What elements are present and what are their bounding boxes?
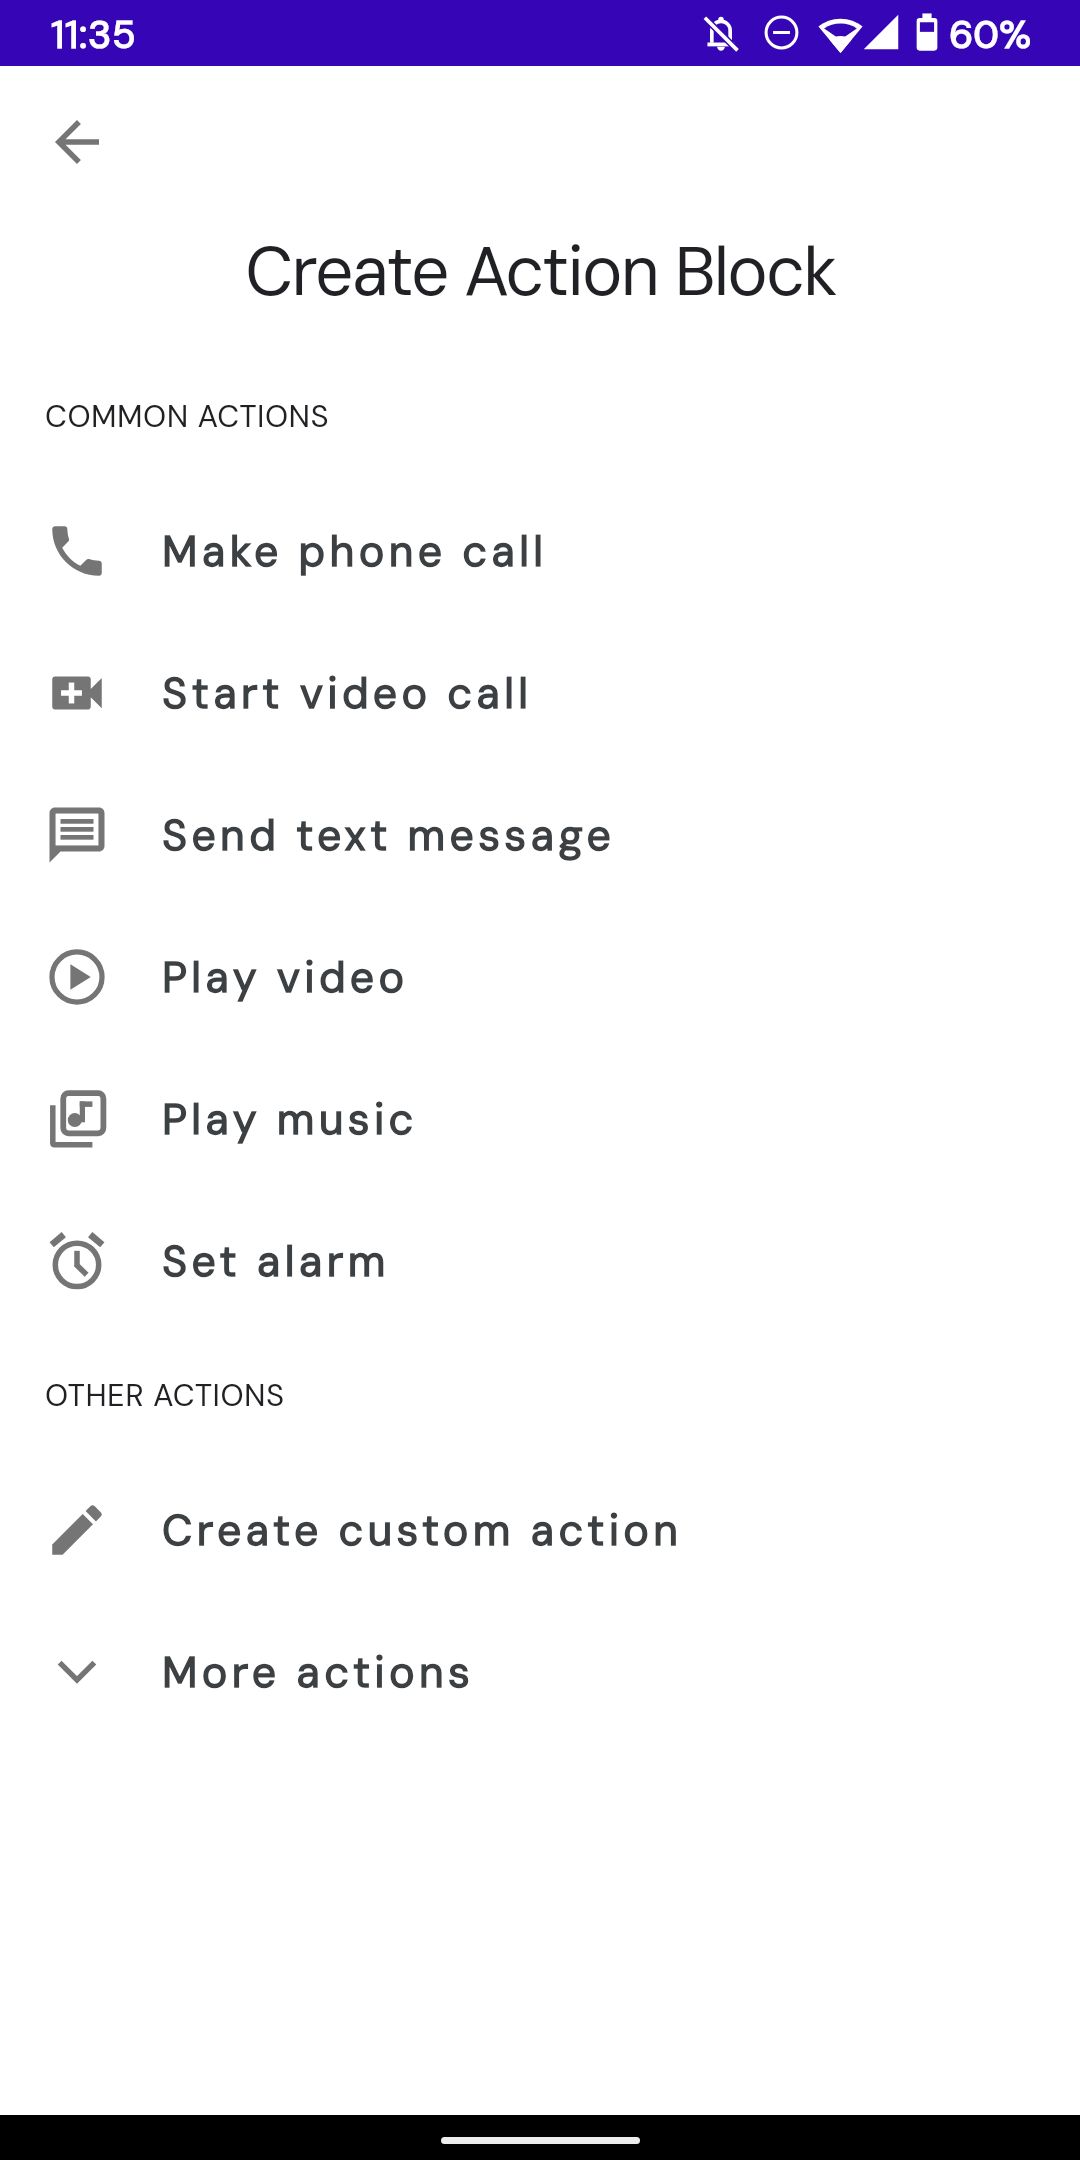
staticText: OTHER ACTIONS [45, 1375, 285, 1415]
staticText: 60% [949, 9, 1032, 60]
button[interactable]: More actions [0, 1601, 1080, 1743]
staticText: Set alarm [162, 1233, 390, 1289]
button[interactable]: Play video [0, 906, 1080, 1048]
button[interactable]: Start video call [0, 622, 1080, 764]
staticText: COMMON ACTIONS [45, 396, 330, 436]
button[interactable]: Navigate up [44, 109, 110, 175]
button[interactable]: Make phone call [0, 480, 1080, 622]
staticText: Start video call [162, 665, 533, 721]
staticText: Make phone call [162, 523, 548, 579]
staticText: Create Action Block [245, 228, 836, 308]
button[interactable]: Play music [0, 1048, 1080, 1190]
button[interactable]: Send text message [0, 764, 1080, 906]
button[interactable]: Create custom action [0, 1459, 1080, 1601]
button[interactable]: Set alarm [0, 1190, 1080, 1332]
staticText: Create custom action [162, 1502, 683, 1558]
staticText: 11:35 [51, 9, 137, 60]
staticText: More actions [162, 1644, 475, 1700]
staticText: Play music [162, 1091, 418, 1147]
staticText: Play video [162, 949, 409, 1005]
staticText: Send text message [162, 807, 616, 863]
